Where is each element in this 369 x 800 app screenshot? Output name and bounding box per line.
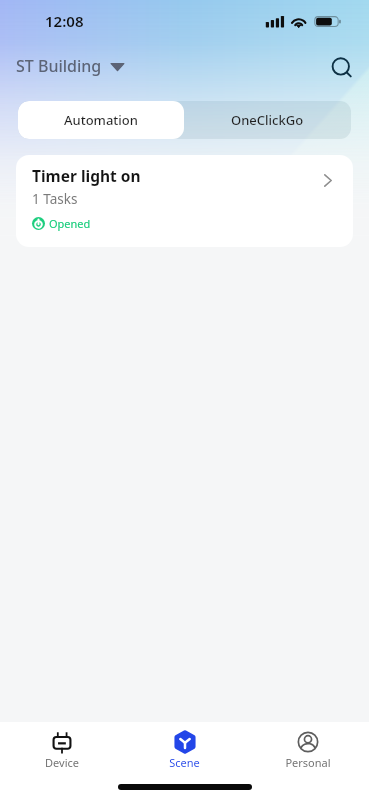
button[interactable]: Automation [18,101,184,139]
staticText: ST Building [16,55,102,77]
button[interactable]: Device [0,730,123,774]
staticText: Device [45,755,79,770]
staticText: Automation [64,111,138,129]
staticText: Scene [169,755,200,770]
button[interactable]: Personal [246,730,369,774]
staticText: 1 Tasks [32,190,78,208]
staticText: 12:08 [45,11,84,31]
button[interactable]: Search [326,52,358,84]
staticText: Opened [49,216,91,231]
button[interactable]: ST Building [16,55,125,77]
button[interactable]: Scene [123,730,246,774]
staticText: OneClickGo [231,111,304,129]
staticText: Timer light on [32,165,141,186]
button[interactable]: Timer light on [16,155,353,247]
staticText: Personal [285,755,331,770]
button[interactable]: OneClickGo [184,101,351,139]
